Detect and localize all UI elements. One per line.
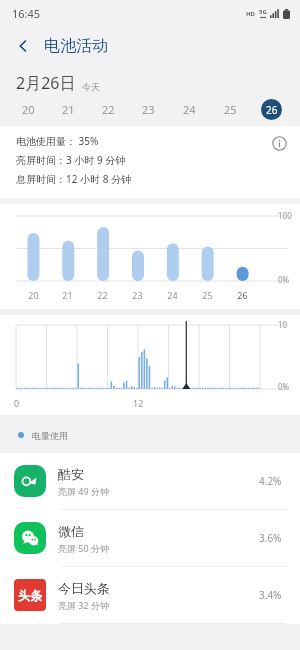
staticText: 2月26日 — [16, 72, 76, 94]
staticText: 电池使用量： 35% — [16, 134, 99, 148]
staticText: 电池活动 — [44, 36, 108, 56]
staticText: 亮屏时间：3 小时 9 分钟 — [16, 153, 126, 167]
button[interactable]: 24 — [169, 94, 210, 124]
staticText: 息屏时间：12 小时 8 分钟 — [16, 172, 131, 186]
staticText: 22 — [97, 289, 108, 301]
staticText: 23 — [142, 102, 155, 117]
staticText: 22 — [102, 102, 115, 117]
button[interactable]: 22 — [88, 94, 128, 124]
staticText: 20 — [28, 289, 39, 301]
button[interactable]: 微信 — [0, 510, 300, 566]
button[interactable]: 头条 — [0, 567, 300, 623]
staticText: 今天 — [82, 81, 100, 92]
staticText: 酷安 — [58, 466, 84, 482]
staticText: 4.2% — [259, 474, 282, 488]
staticText: 25 — [224, 102, 237, 117]
staticText: 今日头条 — [58, 580, 110, 596]
staticText: 3.6% — [259, 531, 282, 545]
staticText: 0 — [14, 397, 20, 409]
staticText: 24 — [167, 289, 178, 301]
staticText: 12 — [133, 397, 144, 409]
staticText: 5G — [259, 8, 267, 16]
staticText: 3.4% — [259, 588, 282, 602]
staticText: 亮屏 49 分钟 — [58, 485, 109, 497]
staticText: 100 — [278, 210, 292, 221]
staticText: 0% — [278, 381, 290, 392]
button[interactable]: 酷安 — [0, 453, 300, 509]
button[interactable]: 23 — [128, 94, 169, 124]
staticText: 亮屏 32 分钟 — [58, 599, 109, 611]
staticText: HD — [246, 10, 255, 18]
staticText: 21 — [62, 102, 75, 117]
button[interactable]: 26 — [251, 94, 292, 124]
staticText: 头条 — [18, 588, 42, 603]
staticText: 10 — [278, 319, 288, 330]
staticText: 16:45 — [12, 6, 41, 21]
staticText: 电量使用 — [32, 430, 68, 441]
staticText: 微信 — [58, 523, 84, 539]
staticText: 0% — [278, 274, 290, 285]
button[interactable]: 20 — [8, 94, 48, 124]
staticText: 21 — [62, 289, 73, 301]
button[interactable]: Information — [266, 130, 292, 156]
button[interactable]: 21 — [48, 94, 88, 124]
button[interactable]: 25 — [210, 94, 251, 124]
staticText: 25 — [202, 289, 213, 301]
staticText: 亮屏 50 分钟 — [58, 542, 109, 554]
staticText: 20 — [22, 102, 35, 117]
staticText: 26 — [266, 103, 278, 117]
staticText: 24 — [183, 102, 196, 117]
button[interactable]: Back — [8, 31, 38, 61]
staticText: 26 — [237, 289, 248, 301]
staticText: 23 — [132, 289, 143, 301]
